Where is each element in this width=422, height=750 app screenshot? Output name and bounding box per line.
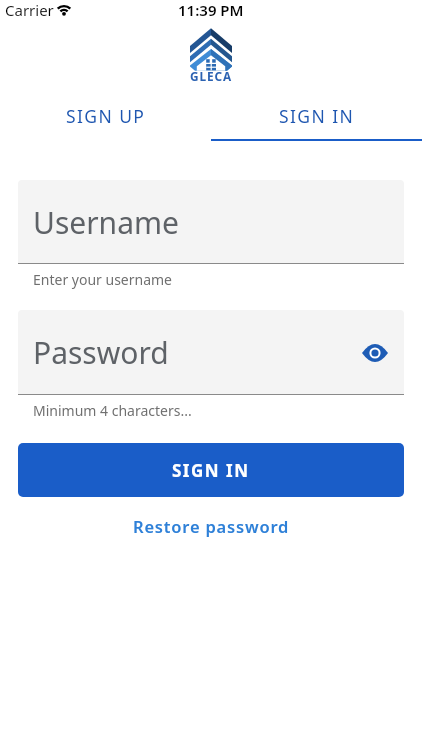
staticText: Minimum 4 characters... [33,401,192,420]
staticText: Username [33,202,179,243]
button[interactable]: SIGN UP [0,84,211,139]
button[interactable]: Password [18,310,404,395]
button[interactable]: Username [18,180,404,264]
staticText: Carrier [5,0,54,20]
button[interactable]: SIGN IN [211,84,422,139]
button[interactable] [360,338,390,368]
staticText: Restore password [133,515,290,537]
staticText: Password [33,332,169,373]
staticText: SIGN IN [172,459,250,482]
staticText: GLECA [190,68,232,84]
button[interactable]: SIGN IN [18,443,404,497]
staticText: SIGN UP [66,104,146,128]
button[interactable]: Restore password [125,511,298,541]
staticText: 11:39 PM [178,0,244,20]
staticText: Enter your username [33,270,173,289]
staticText: SIGN IN [279,104,355,128]
